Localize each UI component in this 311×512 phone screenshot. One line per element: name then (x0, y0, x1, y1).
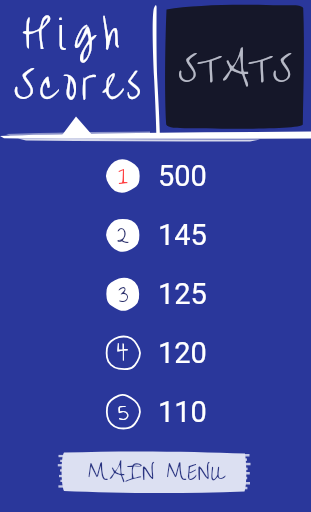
staticText: 500 (158, 159, 207, 193)
staticText: 5 (118, 393, 129, 430)
staticText: 1 (118, 157, 128, 194)
staticText: STATS (178, 32, 292, 105)
button[interactable]: High (0, 0, 150, 118)
staticText: 120 (158, 336, 207, 370)
staticText: 3 (118, 275, 129, 312)
button[interactable]: 3 (103, 272, 213, 316)
button[interactable]: 2 (103, 213, 213, 257)
button[interactable]: 1 (103, 154, 213, 198)
button[interactable]: STATS (165, 4, 304, 129)
staticText: 4 (117, 334, 129, 371)
staticText: MAIN MENU (88, 451, 225, 494)
staticText: 110 (158, 395, 207, 429)
staticText: 2 (117, 216, 130, 253)
button[interactable]: 4 (103, 331, 213, 375)
staticText: Scores (14, 45, 146, 125)
button[interactable]: MAIN MENU (58, 448, 252, 498)
staticText: 125 (158, 277, 207, 311)
staticText: 145 (158, 218, 207, 252)
staticText: High (22, 0, 128, 76)
button[interactable]: 5 (103, 390, 213, 434)
